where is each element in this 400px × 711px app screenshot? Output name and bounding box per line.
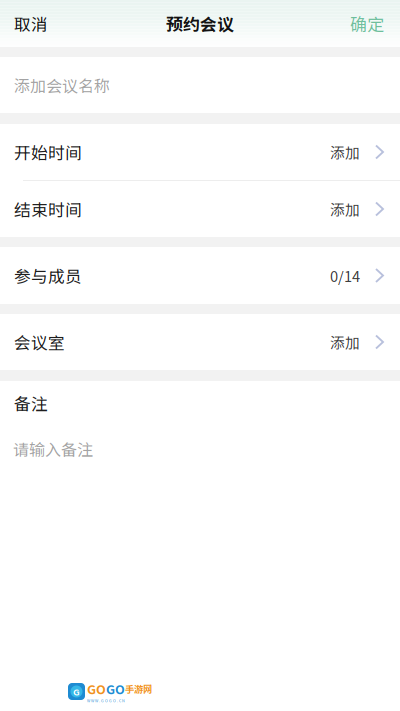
staticText: 取消	[14, 11, 48, 35]
staticText: 结束时间	[14, 197, 82, 221]
staticText: GO	[106, 680, 125, 698]
button[interactable]: 添加会议名称	[0, 57, 400, 113]
button[interactable]: 结束时间	[0, 181, 400, 237]
button[interactable]: 会议室	[0, 314, 400, 370]
staticText: 会议室	[14, 330, 65, 354]
button[interactable]: 开始时间	[0, 124, 400, 180]
staticText: 添加	[330, 331, 360, 353]
staticText: 参与成员	[14, 263, 82, 287]
staticText: 开始时间	[14, 140, 82, 164]
button[interactable]: 确定	[330, 0, 400, 46]
staticText: 添加	[330, 198, 360, 220]
staticText: 确定	[350, 11, 384, 36]
staticText: 添加	[330, 141, 360, 163]
button[interactable]: 参与成员	[0, 247, 400, 304]
staticText: 添加会议名称	[14, 73, 110, 97]
staticText: GO	[87, 680, 106, 698]
staticText: 手游网	[125, 682, 152, 695]
staticText: 预约会议	[166, 11, 234, 36]
staticText: 0/14	[330, 265, 360, 286]
button[interactable]: 请输入备注	[0, 415, 400, 470]
button[interactable]: 取消	[0, 0, 68, 46]
staticText: W W W . G O G O . C N	[87, 698, 125, 703]
staticText: G	[73, 685, 80, 698]
staticText: 备注	[14, 391, 48, 415]
staticText: 请输入备注	[13, 437, 93, 460]
